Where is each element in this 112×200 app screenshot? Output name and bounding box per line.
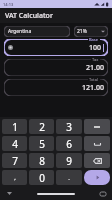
button[interactable]: Enter — [84, 170, 110, 185]
staticText: 100 — [89, 43, 102, 53]
staticText: Argentina — [8, 28, 32, 35]
button[interactable]: Space — [84, 136, 110, 151]
staticText: 1 — [12, 120, 18, 134]
button[interactable]: 8 — [29, 153, 54, 168]
staticText: 0 — [39, 171, 45, 185]
staticText: 121.00 — [82, 83, 104, 93]
staticText: 2 — [39, 120, 45, 134]
staticText: 8 — [39, 154, 45, 168]
button[interactable]: 0 — [29, 170, 54, 185]
button[interactable]: 1 — [2, 119, 27, 134]
button[interactable]: 5 — [29, 136, 54, 151]
button[interactable]: 3 — [56, 119, 82, 134]
button[interactable]: 21% — [74, 26, 108, 37]
staticText: Total — [89, 77, 99, 82]
staticText: Base — [89, 37, 99, 42]
button[interactable]: 21.00 — [4, 59, 108, 76]
staticText: 3 — [66, 120, 72, 134]
button[interactable]: Hide keyboard — [5, 189, 14, 198]
button[interactable]: 121.00 — [4, 79, 108, 96]
button[interactable]: , — [2, 170, 27, 185]
button[interactable]: 9 — [56, 153, 82, 168]
staticText: . — [68, 174, 70, 182]
button[interactable]: 100 — [4, 39, 108, 56]
button[interactable]: 7 — [2, 153, 27, 168]
button[interactable]: Minus — [84, 119, 110, 134]
staticText: Tax — [92, 57, 99, 62]
staticText: , — [14, 174, 16, 182]
button[interactable]: Switch keyboard — [98, 189, 107, 198]
staticText: 6 — [66, 137, 72, 151]
staticText: 21.00 — [86, 63, 104, 73]
staticText: 5 — [39, 137, 45, 151]
button[interactable]: 6 — [56, 136, 82, 151]
button[interactable]: 2 — [29, 119, 54, 134]
staticText: VAT Calculator — [5, 11, 53, 21]
staticText: 21% — [77, 28, 87, 35]
button[interactable]: Argentina — [4, 26, 70, 37]
button[interactable]: 4 — [2, 136, 27, 151]
staticText: 14:13 — [3, 2, 14, 7]
staticText: 9 — [66, 154, 72, 168]
button[interactable]: . — [56, 170, 82, 185]
staticText: 7 — [12, 154, 18, 168]
button[interactable]: Backspace — [84, 153, 110, 168]
staticText: 4 — [12, 137, 18, 151]
